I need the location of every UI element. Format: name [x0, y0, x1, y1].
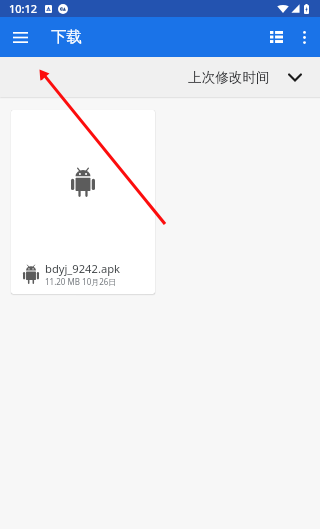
staticText: 下载	[51, 27, 82, 47]
button[interactable]: 上次修改时间	[188, 57, 320, 97]
button[interactable]: List view	[256, 17, 296, 57]
staticText: 11.20 MB 10月26日	[45, 276, 117, 287]
button[interactable]: More options	[284, 17, 320, 57]
button[interactable]: Menu	[0, 17, 40, 57]
staticText: bdyj_9242.apk	[45, 261, 121, 276]
staticText: 上次修改时间	[188, 69, 270, 86]
staticText: 10:12	[9, 1, 38, 16]
button[interactable]: bdyj_9242.apk	[11, 110, 155, 294]
